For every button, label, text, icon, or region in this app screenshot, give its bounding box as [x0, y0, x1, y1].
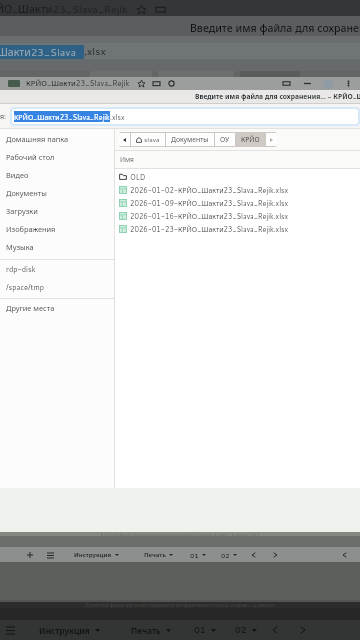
staticText: Видео: [6, 170, 29, 180]
button[interactable]: Музыка: [0, 238, 114, 256]
button[interactable]: Назад: [119, 133, 130, 146]
staticText: Введите имя файла для сохранения: [190, 21, 360, 36]
button[interactable]: Печать: [143, 547, 174, 562]
staticText: 2026-01-09-КРЙО_Шакти23_Slava_Rejik.xlsx: [130, 198, 289, 208]
button[interactable]: /space/tmp: [0, 278, 114, 296]
staticText: КРЙО: [241, 135, 260, 144]
button[interactable]: OLD: [115, 170, 360, 183]
button[interactable]: Следующий: [298, 625, 308, 635]
button[interactable]: 02: [234, 620, 258, 640]
staticText: Рабочий стол: [6, 152, 55, 162]
staticText: Инструкция: [39, 625, 90, 636]
button[interactable]: Рабочий стол: [0, 148, 114, 166]
staticText: Загрузки: [6, 206, 38, 216]
button[interactable]: Вперёд: [266, 133, 277, 146]
staticText: .xlsx: [84, 44, 106, 59]
button[interactable]: Печать: [130, 620, 172, 640]
button[interactable]: Список листов: [45, 550, 55, 560]
staticText: /space/tmp: [6, 282, 44, 292]
staticText: Изображения: [6, 224, 56, 234]
staticText: 2026-01-16-КРЙО_Шакти23_Slava_Rejik.xlsx: [130, 211, 289, 221]
button[interactable]: КРЙО_Шакти23_Slava_Rejik: [12, 109, 358, 124]
staticText: slava: [144, 135, 160, 145]
staticText: 02: [235, 624, 247, 636]
staticText: Музыка: [6, 242, 34, 252]
button[interactable]: 01: [193, 620, 217, 640]
button[interactable]: Список листов: [5, 625, 15, 635]
staticText: 2026-01-02-КРЙО_Шакти23_Slava_Rejik.xlsx: [130, 185, 289, 195]
staticText: Инструкция: [74, 551, 112, 559]
staticText: Шакти23_Slava_Rejik: [0, 45, 81, 59]
button[interactable]: Домашняя папка: [0, 130, 114, 148]
button[interactable]: Загрузки: [0, 202, 114, 220]
staticText: В учётной форме обучения содержится инте…: [101, 532, 260, 536]
button[interactable]: Предыдущий: [270, 625, 280, 635]
button[interactable]: Документы: [166, 133, 214, 146]
button[interactable]: Инструкция: [38, 620, 101, 640]
staticText: КРЙО_Шакти23_Slava_Rejik: [26, 78, 130, 89]
button[interactable]: Видео: [0, 166, 114, 184]
staticText: Имя: [120, 155, 134, 164]
button[interactable]: Другие места: [0, 299, 114, 317]
staticText: ЙО_Шакти23_Slava_Rejik: [0, 2, 128, 17]
staticText: КРЙО_Шакти23_Slava_Rejik: [14, 112, 110, 122]
button[interactable]: 01: [189, 547, 207, 562]
staticText: Документы: [171, 135, 209, 144]
staticText: 01: [194, 624, 206, 636]
staticText: Печать: [144, 551, 166, 559]
button[interactable]: Добавить лист: [25, 550, 35, 560]
staticText: 2026-01-23-КРЙО_Шакти23_Slava_Rejik.xlsx: [130, 224, 289, 234]
staticText: OLD: [130, 172, 146, 182]
button[interactable]: rdp-disk: [0, 260, 114, 278]
button[interactable]: Инструкция: [73, 547, 120, 562]
button[interactable]: 2026-01-23-КРЙО_Шакти23_Slava_Rejik.xlsx: [115, 222, 360, 235]
staticText: В учётной форме обучения содержится инте…: [86, 602, 274, 608]
button[interactable]: Изображения: [0, 220, 114, 238]
button[interactable]: КРЙО: [236, 133, 265, 146]
staticText: Домашняя папка: [6, 134, 69, 144]
button[interactable]: 2026-01-02-КРЙО_Шакти23_Slava_Rejik.xlsx: [115, 183, 360, 196]
button[interactable]: Документы: [0, 184, 114, 202]
staticText: Документы: [6, 188, 47, 198]
button[interactable]: 2026-01-16-КРЙО_Шакти23_Slava_Rejik.xlsx: [115, 209, 360, 222]
button[interactable]: ОУ: [215, 133, 235, 146]
button[interactable]: Предыдущий: [339, 550, 349, 560]
staticText: я:: [0, 111, 6, 121]
button[interactable]: slava: [131, 133, 165, 146]
staticText: 02: [221, 551, 230, 559]
button[interactable]: Предыдущий: [248, 550, 258, 560]
staticText: Другие места: [6, 303, 55, 313]
button[interactable]: 02: [220, 547, 238, 562]
button[interactable]: 2026-01-09-КРЙО_Шакти23_Slava_Rejik.xlsx: [115, 196, 360, 209]
staticText: ОУ: [220, 135, 230, 144]
staticText: Введите имя файла для сохранения... - КР…: [195, 92, 360, 101]
staticText: .xlsx: [110, 112, 125, 122]
staticText: rdp-disk: [6, 264, 36, 274]
staticText: 01: [190, 551, 199, 559]
staticText: Печать: [131, 625, 161, 636]
button[interactable]: Следующий: [270, 550, 280, 560]
